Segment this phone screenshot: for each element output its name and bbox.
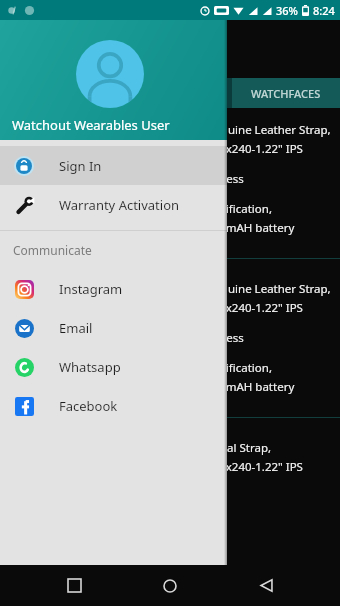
staticText: 240x240-1.22" IPS	[206, 300, 303, 316]
staticText: 240x240-1.22" IPS	[206, 141, 303, 157]
staticText: Watchout Wearables User	[12, 116, 170, 134]
staticText: Warranty Activation	[59, 196, 180, 214]
staticText: Genuine Leather Strap,	[206, 281, 331, 297]
button[interactable]: WATCHFACES	[232, 78, 340, 108]
staticText: Notification,	[206, 360, 272, 376]
staticText: Genuine Leather Strap,	[206, 122, 331, 138]
button[interactable]: Whatsapp	[0, 347, 227, 386]
staticText: Email	[59, 319, 93, 337]
staticText: Facebook	[59, 397, 118, 415]
button[interactable]: Instagram	[0, 269, 227, 308]
staticText: 300mAH battery	[206, 379, 295, 395]
button[interactable]: Watchout Wearables User	[0, 20, 227, 140]
button[interactable]: Warranty Activation	[0, 185, 227, 224]
staticText: 240x240-1.22" IPS	[206, 459, 303, 475]
button[interactable]: Home	[148, 565, 192, 606]
staticText: Communicate	[13, 242, 92, 258]
button[interactable]: Genuine Leather Strap,	[0, 281, 340, 395]
staticText: 36%	[276, 3, 298, 18]
staticText: Fitness	[206, 330, 244, 346]
button[interactable]: Genuine Leather Strap,	[0, 122, 340, 236]
button[interactable]: Sign In	[0, 146, 227, 185]
staticText: Metal Strap,	[206, 440, 272, 456]
button[interactable]: Recent apps	[52, 565, 96, 606]
staticText: 300mAH battery	[206, 220, 295, 236]
button[interactable]: Facebook	[0, 386, 227, 425]
staticText: WATCHFACES	[251, 86, 321, 101]
staticText: Sign In	[59, 157, 102, 175]
button[interactable]: Email	[0, 308, 227, 347]
staticText: Fitness	[206, 171, 244, 187]
button[interactable]: Back	[244, 565, 288, 606]
button[interactable]: Metal Strap,	[0, 440, 340, 475]
staticText: Notification,	[206, 201, 272, 217]
staticText: 8:24	[313, 3, 335, 18]
staticText: Whatsapp	[59, 358, 121, 376]
staticText: Instagram	[59, 280, 123, 298]
